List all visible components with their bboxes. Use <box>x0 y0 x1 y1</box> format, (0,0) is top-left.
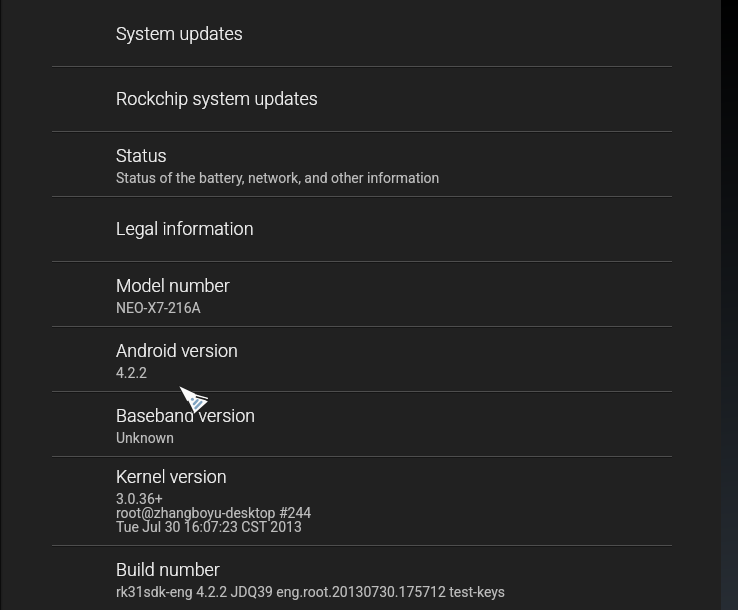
staticText: NEO-X7-216A <box>116 300 201 316</box>
staticText: Build number <box>116 559 220 580</box>
staticText: Status of the battery, network, and othe… <box>116 170 440 186</box>
button[interactable]: Build number <box>0 545 721 610</box>
button[interactable]: Status <box>0 131 721 196</box>
staticText: Android version <box>116 340 238 361</box>
staticText: 4.2.2 <box>116 365 147 381</box>
button[interactable]: Android version <box>0 326 721 391</box>
staticText: Unknown <box>116 430 174 446</box>
button[interactable]: Model number <box>0 261 721 326</box>
staticText: 3.0.36+ root@zhangboyu-desktop #244 Tue … <box>116 491 312 536</box>
button[interactable]: Rockchip system updates <box>0 66 721 131</box>
staticText: Baseband version <box>116 405 256 426</box>
staticText: Kernel version <box>116 466 227 487</box>
button[interactable]: System updates <box>0 0 721 66</box>
button[interactable]: Legal information <box>0 196 721 261</box>
staticText: Model number <box>116 275 230 296</box>
staticText: System updates <box>116 23 243 44</box>
staticText: Status <box>116 145 167 166</box>
staticText: rk31sdk-eng 4.2.2 JDQ39 eng.root.2013073… <box>116 584 506 600</box>
staticText: Rockchip system updates <box>116 88 318 109</box>
button[interactable]: Baseband version <box>0 391 721 456</box>
staticText: Legal information <box>116 218 254 239</box>
button[interactable]: Kernel version <box>0 456 721 545</box>
